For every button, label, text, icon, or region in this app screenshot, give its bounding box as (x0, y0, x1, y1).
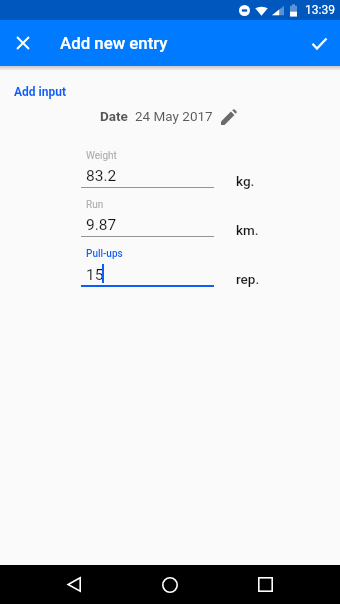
button[interactable]: Close (6, 26, 40, 60)
button[interactable]: Save (302, 26, 336, 60)
staticText: km. (236, 222, 259, 238)
staticText: rep. (236, 271, 260, 287)
staticText: 83.2 (86, 167, 117, 185)
staticText: 15 (86, 266, 104, 284)
button[interactable]: Date (0, 108, 340, 124)
staticText: Weight (86, 150, 117, 162)
button[interactable]: Home (150, 565, 190, 604)
staticText: 13:39 (305, 3, 335, 17)
button[interactable]: Pull-ups (81, 248, 214, 288)
staticText: Pull-ups (86, 248, 123, 260)
other: Edit date (221, 109, 237, 125)
staticText: Date (100, 108, 128, 124)
staticText: Run (86, 199, 104, 211)
staticText: kg. (236, 173, 255, 189)
button[interactable]: Run (81, 199, 214, 239)
button[interactable]: Add input (11, 82, 70, 102)
staticText: 24 May 2017 (135, 108, 213, 124)
button[interactable]: Recents (245, 565, 285, 604)
button[interactable]: Back (54, 565, 94, 604)
staticText: Add new entry (60, 33, 168, 53)
staticText: 9.87 (86, 216, 117, 234)
button[interactable]: Weight (81, 150, 214, 190)
